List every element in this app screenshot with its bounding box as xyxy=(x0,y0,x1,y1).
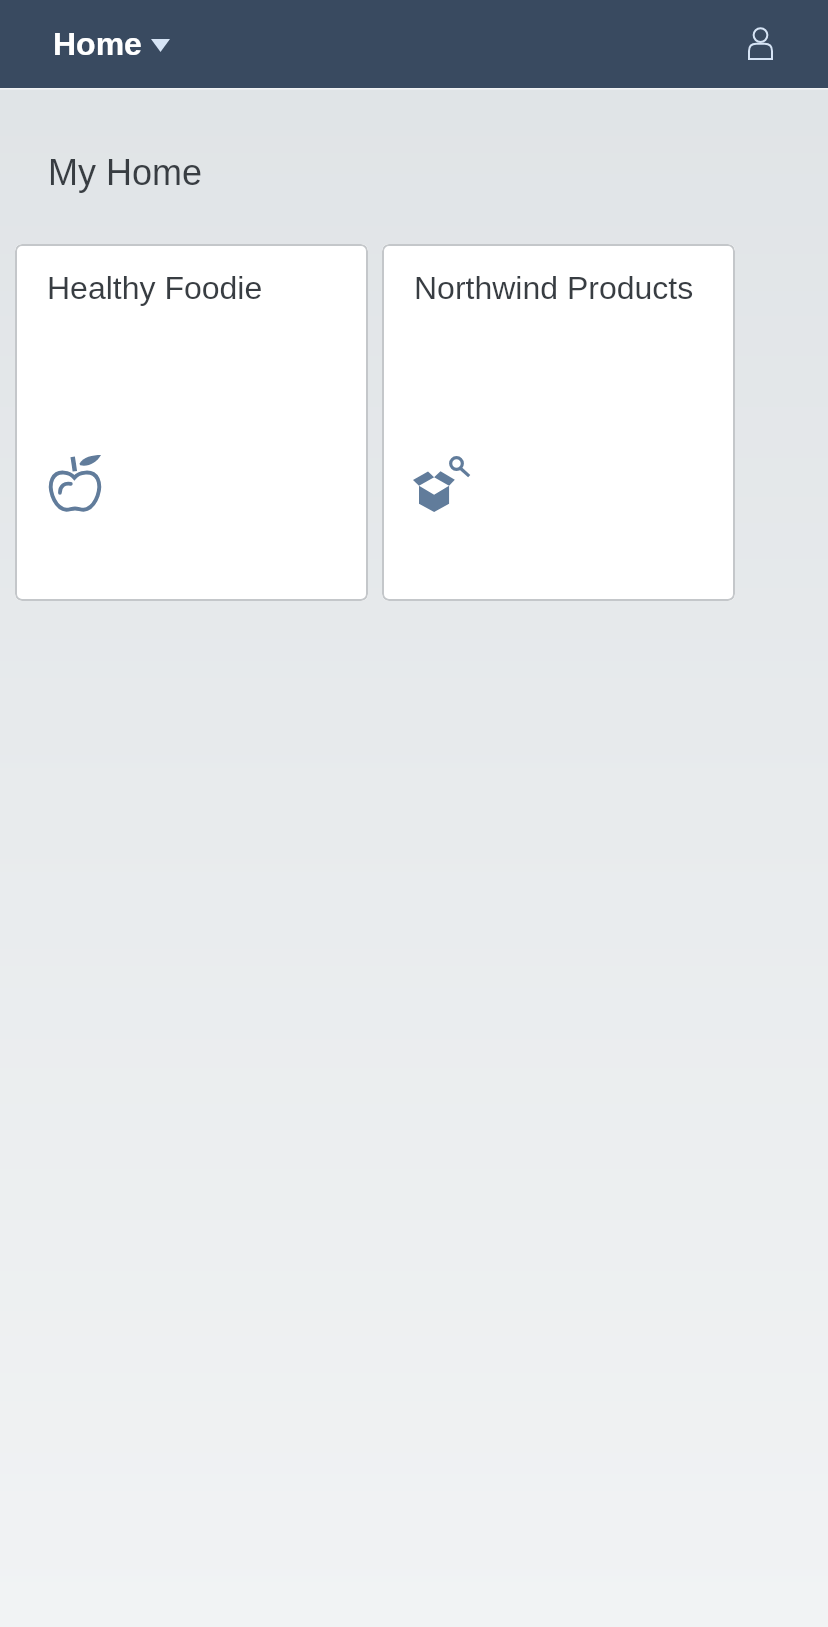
button[interactable]: Profile xyxy=(732,16,788,72)
button[interactable]: Home xyxy=(41,18,182,70)
staticText: Healthy Foodie xyxy=(47,270,263,306)
button[interactable]: Northwind Products xyxy=(382,244,735,601)
staticText: Northwind Products xyxy=(414,270,694,306)
staticText: Home xyxy=(53,26,142,62)
button[interactable]: Healthy Foodie xyxy=(15,244,368,601)
staticText: My Home xyxy=(48,152,203,192)
